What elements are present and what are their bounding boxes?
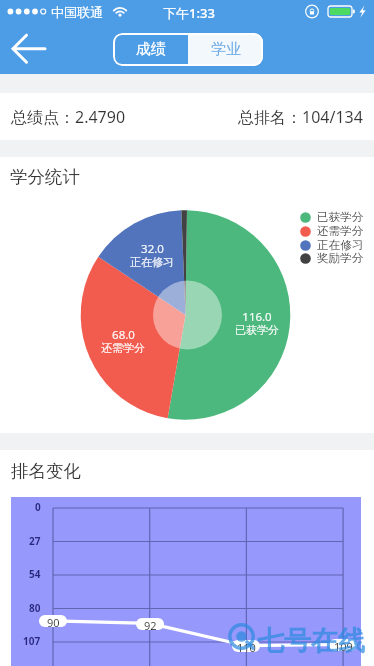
staticText: 总排名：104/134 xyxy=(238,106,363,128)
staticText: 109 xyxy=(334,639,353,651)
staticText: 正在修习 xyxy=(130,255,174,269)
staticText: 已获学分 xyxy=(235,323,279,337)
button[interactable]: 成绩 xyxy=(113,33,188,66)
staticText: 27 xyxy=(29,534,41,548)
staticText: 学分统计 xyxy=(10,166,80,188)
staticText: 已获学分 xyxy=(317,210,364,224)
staticText: 正在修习 xyxy=(317,238,364,252)
staticText: 七号在线 xyxy=(257,624,365,658)
staticText: 奖励学分 xyxy=(317,251,364,265)
staticText: 116.0 xyxy=(242,309,272,325)
button[interactable]: 学业 xyxy=(188,33,263,66)
staticText: 54 xyxy=(29,567,41,581)
button[interactable]: 返回 xyxy=(8,27,50,69)
staticText: 中国联通 xyxy=(51,4,103,20)
staticText: 下午1:33 xyxy=(163,4,215,22)
staticText: 成绩 xyxy=(136,40,166,59)
staticText: 还需学分 xyxy=(101,341,145,355)
staticText: 还需学分 xyxy=(317,224,364,238)
staticText: 107 xyxy=(23,634,41,648)
staticText: 92 xyxy=(144,618,157,630)
staticText: 110 xyxy=(237,640,256,652)
staticText: 68.0 xyxy=(112,327,135,343)
staticText: 总绩点：2.4790 xyxy=(11,106,126,128)
staticText: 32.0 xyxy=(141,241,164,257)
staticText: 学业 xyxy=(211,40,241,59)
staticText: 80 xyxy=(29,601,41,615)
staticText: 0 xyxy=(35,500,41,514)
staticText: 排名变化 xyxy=(11,460,81,482)
staticText: 90 xyxy=(47,615,60,627)
